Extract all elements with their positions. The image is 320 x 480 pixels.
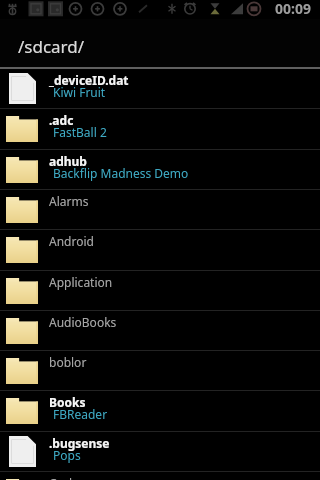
staticText: FBReader bbox=[53, 406, 108, 422]
staticText: Cache bbox=[49, 475, 84, 480]
button[interactable]: Alarms bbox=[0, 190, 320, 229]
staticText: adhub bbox=[49, 153, 87, 169]
button[interactable]: /sdcard/ bbox=[0, 19, 320, 68]
staticText: AudioBooks bbox=[49, 314, 117, 330]
staticText: .bugsense bbox=[49, 435, 110, 451]
staticText: _deviceID.dat bbox=[49, 72, 129, 88]
button[interactable]: Books bbox=[0, 391, 320, 430]
button[interactable]: Application bbox=[0, 271, 320, 310]
button[interactable]: .adc bbox=[0, 109, 320, 148]
staticText: Books bbox=[49, 394, 86, 410]
button[interactable]: Android bbox=[0, 230, 320, 269]
staticText: .adc bbox=[49, 112, 74, 128]
button[interactable]: adhub bbox=[0, 150, 320, 189]
staticText: FastBall 2 bbox=[53, 124, 107, 140]
staticText: /sdcard/ bbox=[18, 35, 85, 58]
staticText: Application bbox=[49, 274, 113, 290]
button[interactable]: Cache bbox=[0, 472, 320, 480]
button[interactable]: _deviceID.dat bbox=[0, 69, 320, 108]
staticText: Kiwi Fruit bbox=[53, 84, 106, 100]
button[interactable]: boblor bbox=[0, 351, 320, 390]
staticText: Pops bbox=[53, 447, 81, 463]
button[interactable]: .bugsense bbox=[0, 432, 320, 471]
staticText: boblor bbox=[49, 354, 87, 370]
staticText: 00:09 bbox=[275, 0, 311, 18]
staticText: Android bbox=[49, 233, 94, 249]
button[interactable]: AudioBooks bbox=[0, 311, 320, 350]
staticText: Alarms bbox=[49, 193, 89, 209]
staticText: Backflip Madness Demo bbox=[53, 165, 189, 181]
